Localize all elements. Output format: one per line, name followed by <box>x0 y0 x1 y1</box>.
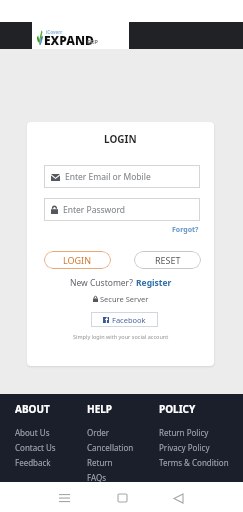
staticText: Feedback <box>15 457 51 468</box>
staticText: Return <box>87 457 113 468</box>
staticText: RESET <box>155 254 181 266</box>
staticText: EXPAND <box>44 32 94 48</box>
button[interactable]: FAQs <box>87 470 107 485</box>
button[interactable]: Feedback <box>15 455 51 470</box>
staticText: Simply login with your social account <box>73 333 169 340</box>
staticText: Contact Us <box>15 442 56 453</box>
staticText: HELP <box>87 402 113 416</box>
button[interactable]: LOGIN <box>44 251 111 269</box>
staticText: iCoverr <box>46 29 63 35</box>
button[interactable]: Return Policy <box>159 425 209 440</box>
staticText: Terms & Condition <box>159 457 229 468</box>
staticText: Order <box>87 427 110 438</box>
button[interactable]: Terms & Condition <box>159 455 229 470</box>
button[interactable]: Recent apps <box>49 483 79 512</box>
button[interactable]: Forgot? <box>172 225 199 235</box>
button[interactable]: Contact Us <box>15 440 56 455</box>
staticText: Secure Server <box>100 294 149 304</box>
staticText: Enter Email or Mobile <box>65 171 151 183</box>
staticText: LOGIN <box>104 132 137 146</box>
button[interactable]: Enter Email or Mobile <box>44 165 200 188</box>
button[interactable]: About Us <box>15 425 50 440</box>
staticText: POLICY <box>159 402 196 416</box>
button[interactable]: Return <box>87 455 113 470</box>
staticText: About Us <box>15 427 50 438</box>
button[interactable]: Back <box>163 483 193 512</box>
staticText: New Customer? <box>70 277 136 289</box>
staticText: ERP <box>87 38 99 46</box>
button[interactable]: Order <box>87 425 110 440</box>
button[interactable]: Enter Password <box>44 198 200 221</box>
button[interactable]: RESET <box>134 251 201 269</box>
staticText: Facebook <box>112 315 146 325</box>
staticText: LOGIN <box>63 254 92 266</box>
staticText: Cancellation <box>87 442 134 453</box>
staticText: FAQs <box>87 472 107 483</box>
button[interactable]: Register <box>136 277 172 289</box>
staticText: Return Policy <box>159 427 209 438</box>
staticText: Privacy Policy <box>159 442 210 453</box>
button[interactable]: Cancellation <box>87 440 134 455</box>
staticText: ABOUT <box>15 402 50 416</box>
staticText: Enter Password <box>63 204 126 216</box>
button[interactable]: Privacy Policy <box>159 440 210 455</box>
button[interactable]: Facebook <box>91 312 158 327</box>
button[interactable]: Home <box>107 483 137 512</box>
